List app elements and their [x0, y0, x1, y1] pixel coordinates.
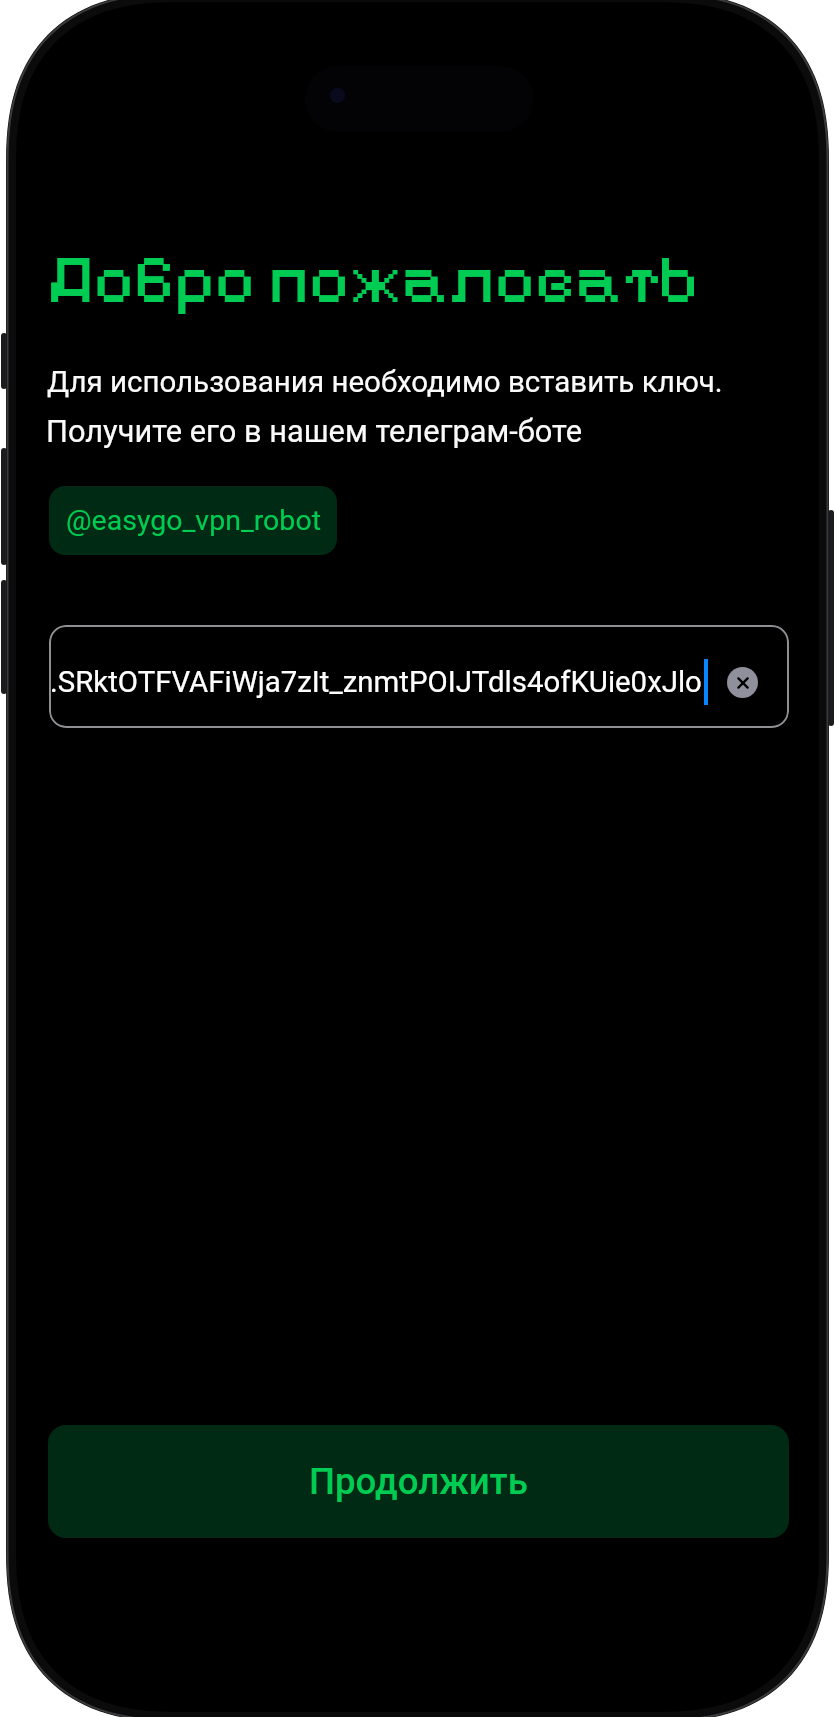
staticText: Добро пожаловать — [47, 238, 703, 321]
button[interactable]: Clear text — [727, 667, 758, 698]
staticText: Для использования необходимо вставить кл… — [47, 365, 723, 400]
staticText: @easygo_vpn_robot — [66, 504, 321, 537]
staticText: Продолжить — [309, 1460, 528, 1503]
button[interactable]: @easygo_vpn_robot — [49, 486, 337, 555]
staticText: .SRktOTFVAFiWja7zIt_znmtPOIJTdls4ofKUie0… — [50, 665, 702, 699]
staticText: Получите его в нашем телеграм-боте — [46, 413, 583, 449]
button[interactable]: Продолжить — [48, 1425, 789, 1538]
button[interactable]: .SRktOTFVAFiWja7zIt_znmtPOIJTdls4ofKUie0… — [49, 625, 789, 728]
